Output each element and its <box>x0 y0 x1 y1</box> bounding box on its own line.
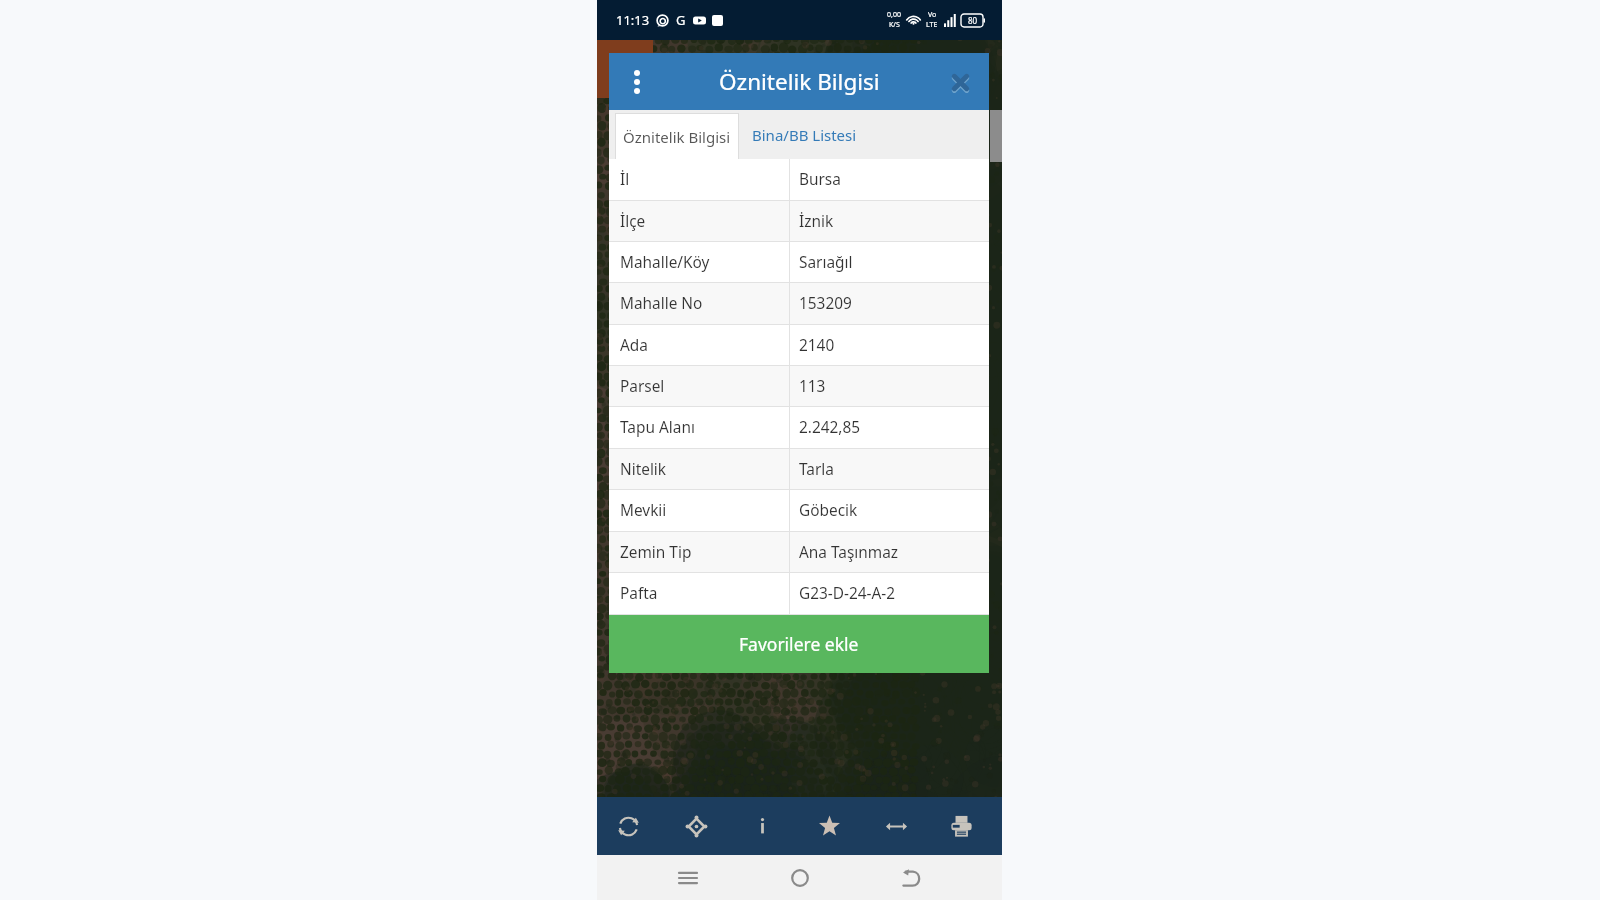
button[interactable]: More options <box>622 67 652 97</box>
staticText: 80 <box>968 15 978 26</box>
staticText: Tarla <box>799 459 834 480</box>
staticText: İl <box>620 169 630 190</box>
button[interactable]: Öznitelik Bilgisi <box>616 114 738 159</box>
staticText: Sarıağıl <box>799 252 853 273</box>
staticText: 2140 <box>799 335 835 356</box>
staticText: G23-D-24-A-2 <box>799 583 896 604</box>
button[interactable]: Back <box>891 858 931 898</box>
staticText: Öznitelik Bilgisi <box>719 66 880 97</box>
staticText: Ana Taşınmaz <box>799 542 899 563</box>
staticText: 113 <box>799 376 826 397</box>
staticText: 153209 <box>799 293 852 314</box>
staticText: Tapu Alanı <box>620 417 695 438</box>
button[interactable]: Print <box>937 802 985 850</box>
button[interactable]: Bina/BB Listesi <box>739 110 869 159</box>
button[interactable]: Home <box>780 858 820 898</box>
button[interactable]: Info <box>738 802 786 850</box>
staticText: Mahalle/Köy <box>620 252 710 273</box>
staticText: K/S <box>889 20 900 30</box>
button[interactable]: Close <box>945 67 975 97</box>
staticText: İlçe <box>620 211 646 232</box>
button[interactable]: Refresh <box>604 802 652 850</box>
staticText: G <box>676 11 686 29</box>
button[interactable]: Locate <box>672 802 720 850</box>
staticText: Mahalle No <box>620 293 703 314</box>
staticText: Bursa <box>799 169 841 190</box>
staticText: İznik <box>799 211 834 232</box>
staticText: Mevkii <box>620 500 667 521</box>
button[interactable]: Recents <box>668 858 708 898</box>
staticText: Ada <box>620 335 648 356</box>
staticText: LTE <box>926 20 938 30</box>
staticText: Göbecik <box>799 500 858 521</box>
staticText: 11:13 <box>616 11 650 29</box>
staticText: Nitelik <box>620 459 667 480</box>
button[interactable]: Measure <box>872 802 920 850</box>
staticText: Pafta <box>620 583 658 604</box>
staticText: 2.242,85 <box>799 417 861 438</box>
staticText: Vo <box>928 10 937 20</box>
button[interactable]: Favorites <box>805 802 853 850</box>
staticText: Favorilere ekle <box>739 632 859 656</box>
staticText: 0,00 <box>887 10 901 20</box>
button[interactable]: Favorilere ekle <box>609 615 989 673</box>
staticText: Öznitelik Bilgisi <box>623 127 731 147</box>
staticText: Zemin Tip <box>620 542 692 563</box>
staticText: Bina/BB Listesi <box>752 125 857 145</box>
staticText: Parsel <box>620 376 665 397</box>
